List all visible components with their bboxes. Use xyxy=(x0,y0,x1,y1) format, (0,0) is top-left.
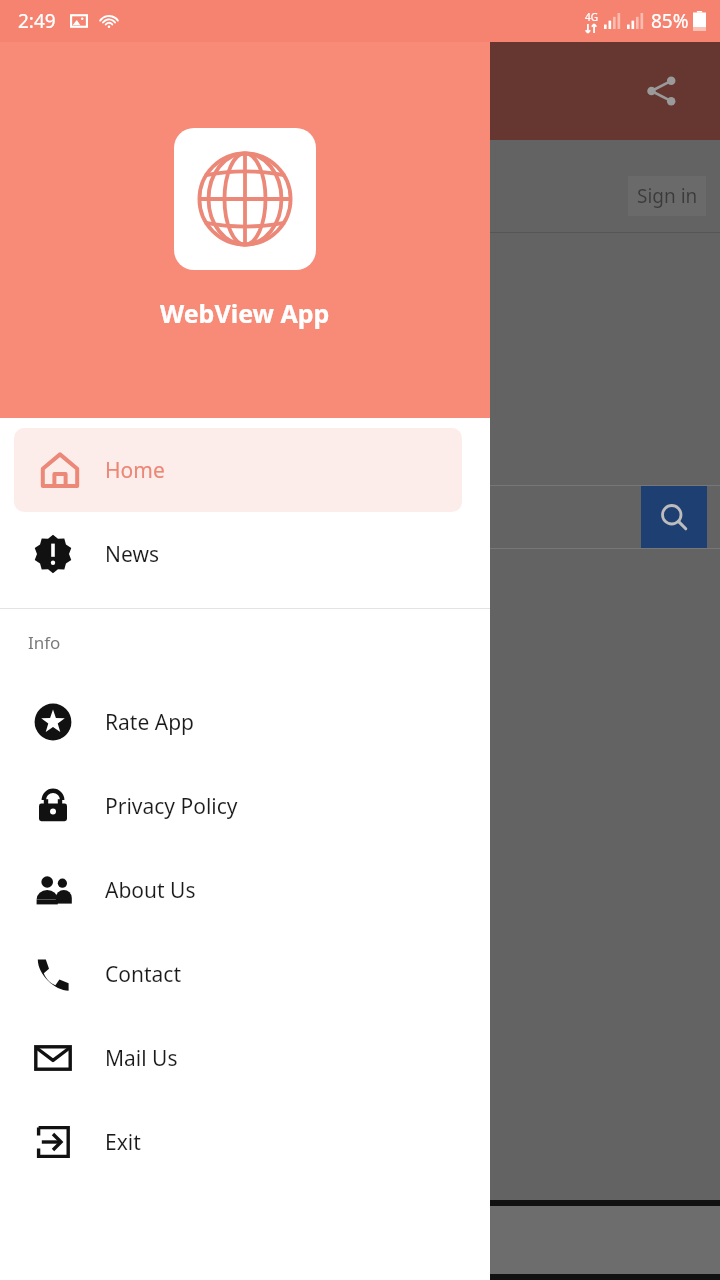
staticText: e xyxy=(0,335,46,466)
staticText: Home xyxy=(105,456,165,485)
staticText: 4G xyxy=(585,10,598,24)
staticText: Mail Us xyxy=(105,1044,178,1073)
staticText: About Us xyxy=(105,876,196,905)
button[interactable]: Share xyxy=(638,68,684,114)
staticText: Info xyxy=(28,631,61,654)
button[interactable]: Privacy Policy xyxy=(0,764,476,848)
button[interactable]: Search xyxy=(641,486,707,548)
button[interactable]: Mail Us xyxy=(0,1016,476,1100)
button[interactable]: News xyxy=(0,512,476,596)
staticText: 2:49 xyxy=(18,8,56,34)
button[interactable]: About Us xyxy=(0,848,476,932)
button[interactable]: Home xyxy=(14,428,462,512)
button[interactable]: Sign in xyxy=(628,176,706,216)
staticText: Exit xyxy=(105,1128,141,1157)
staticText: Sign in xyxy=(637,183,698,209)
button[interactable]: Contact xyxy=(0,932,476,1016)
staticText: Contact xyxy=(105,960,181,989)
staticText: Privacy Policy xyxy=(105,792,238,821)
staticText: 85% xyxy=(651,8,689,34)
staticText: WebView App xyxy=(160,296,330,330)
staticText: Rate App xyxy=(105,708,194,737)
staticText: News xyxy=(105,540,159,569)
button[interactable]: Rate App xyxy=(0,680,476,764)
button[interactable]: Exit xyxy=(0,1100,476,1184)
